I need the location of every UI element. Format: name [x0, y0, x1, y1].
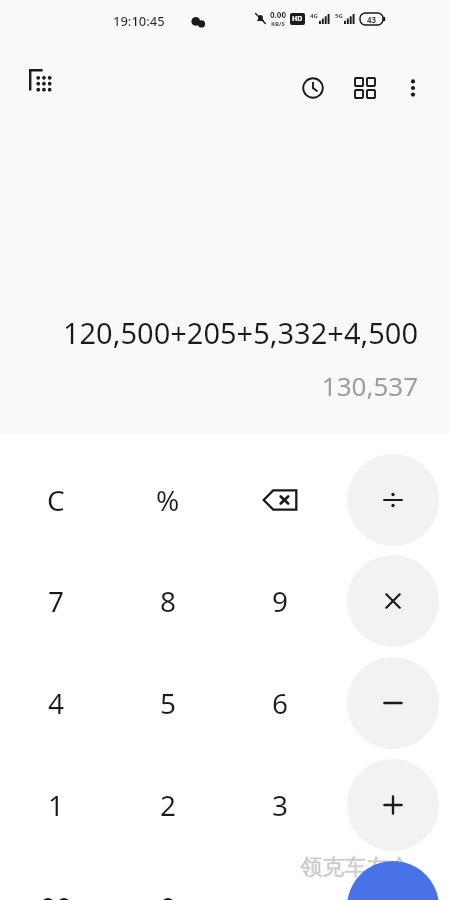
staticText: 7: [48, 582, 65, 620]
staticText: C: [47, 481, 65, 519]
button[interactable]: ÷: [347, 454, 439, 546]
button[interactable]: 3: [234, 759, 326, 851]
button[interactable]: −: [347, 657, 439, 749]
staticText: 1: [48, 786, 65, 824]
staticText: 00: [40, 888, 73, 900]
staticText: 2: [160, 786, 177, 824]
staticText: 0.00: [270, 9, 286, 20]
staticText: 4: [48, 684, 65, 722]
button[interactable]: Scientific mode: [18, 58, 62, 102]
button[interactable]: 00: [10, 861, 102, 900]
staticText: 43: [367, 14, 377, 25]
button[interactable]: 2: [122, 759, 214, 851]
button[interactable]: %: [122, 454, 214, 546]
button[interactable]: Equals: [347, 861, 439, 900]
staticText: 4G: [310, 12, 318, 20]
staticText: 130,537: [321, 368, 418, 403]
staticText: 9: [272, 582, 289, 620]
staticText: 8: [160, 582, 177, 620]
button[interactable]: 0: [122, 861, 214, 900]
button[interactable]: ×: [347, 555, 439, 647]
button[interactable]: C: [10, 454, 102, 546]
staticText: %: [156, 481, 180, 519]
button[interactable]: .: [234, 861, 326, 900]
button[interactable]: 9: [234, 555, 326, 647]
staticText: 5: [160, 684, 177, 722]
staticText: KB/S: [271, 20, 285, 28]
staticText: 3: [272, 786, 289, 824]
button[interactable]: 7: [10, 555, 102, 647]
staticText: 120,500+205+5,332+4,500: [62, 313, 418, 352]
button[interactable]: 1: [10, 759, 102, 851]
button[interactable]: +: [347, 759, 439, 851]
button[interactable]: 6: [234, 657, 326, 749]
staticText: 6: [272, 684, 289, 722]
button[interactable]: History: [290, 65, 336, 111]
button[interactable]: 5: [122, 657, 214, 749]
staticText: HD: [292, 14, 303, 24]
staticText: 5G: [335, 12, 343, 20]
staticText: 0: [160, 888, 177, 900]
button[interactable]: 4: [10, 657, 102, 749]
button[interactable]: Converter: [342, 65, 388, 111]
button[interactable]: 8: [122, 555, 214, 647]
staticText: 领克车友会: [300, 854, 410, 882]
button[interactable]: Backspace: [234, 454, 326, 546]
staticText: 19:10:45: [113, 12, 165, 30]
button[interactable]: More options: [390, 65, 436, 111]
